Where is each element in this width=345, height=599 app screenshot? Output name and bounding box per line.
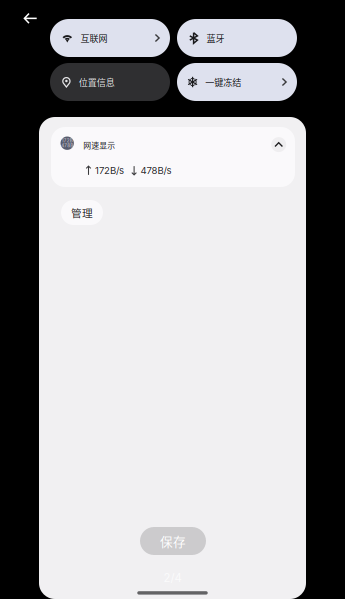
staticText: 蓝牙 [206,31,224,44]
staticText: 2/4 [163,571,181,585]
staticText: 172B [62,138,73,143]
staticText: 管理 [71,205,93,220]
button[interactable]: 蓝牙 [177,19,297,57]
button[interactable]: Back [15,5,45,31]
staticText: 一键冻结 [205,75,241,88]
button[interactable]: 一键冻结 [177,63,297,101]
button[interactable]: 位置信息 [50,63,170,101]
button[interactable]: Collapse [268,134,290,156]
staticText: 位置信息 [79,75,115,88]
staticText: 172B/s [95,165,124,176]
staticText: 保存 [160,532,186,550]
staticText: 网速显示 [83,139,115,151]
staticText: 478B [61,143,73,148]
button[interactable]: 管理 [61,200,103,225]
staticText: 478B/s [140,165,171,176]
button[interactable]: 互联网 [50,19,170,57]
button[interactable]: 保存 [140,527,206,555]
staticText: 互联网 [81,31,108,44]
